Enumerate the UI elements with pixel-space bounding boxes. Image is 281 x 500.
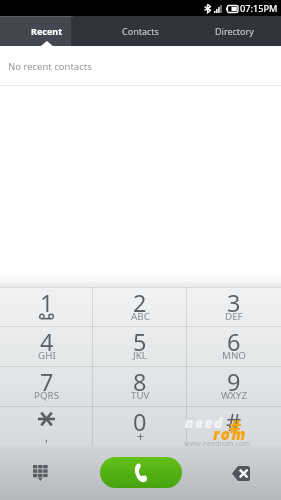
staticText: 1	[40, 287, 54, 319]
button[interactable]: ,	[0, 406, 93, 446]
button[interactable]: Contacts	[93, 16, 187, 46]
button[interactable]: 0	[93, 406, 187, 446]
staticText: 3	[227, 287, 241, 319]
button[interactable]: Recent	[0, 16, 93, 46]
button[interactable]: 5	[93, 326, 187, 366]
staticText: Directory	[215, 25, 254, 37]
staticText: WXYZ	[221, 389, 248, 402]
staticText: 5	[133, 326, 147, 358]
staticText: MNO	[222, 349, 246, 362]
staticText: JKL	[133, 349, 147, 362]
staticText: ABC	[131, 310, 150, 323]
staticText: TUV	[131, 389, 150, 402]
staticText: 0	[133, 406, 147, 438]
staticText: 8	[133, 366, 147, 398]
button[interactable]: 1	[0, 287, 93, 326]
button[interactable]: 7	[0, 366, 93, 406]
button[interactable]: 2	[93, 287, 187, 326]
button[interactable]: Directory	[187, 16, 281, 46]
staticText: ,	[45, 428, 49, 444]
staticText: DEF	[225, 310, 243, 323]
button[interactable]: #	[187, 406, 281, 446]
button[interactable]: Hide keypad	[24, 457, 56, 489]
staticText: 07:15PM	[240, 2, 278, 15]
staticText: 2	[133, 287, 147, 319]
staticText: +	[137, 428, 144, 444]
button[interactable]: 8	[93, 366, 187, 406]
button[interactable]: Call	[100, 457, 182, 488]
staticText: #	[226, 406, 242, 438]
button[interactable]: 6	[187, 326, 281, 366]
staticText: 9	[227, 366, 241, 398]
staticText: Recent	[31, 25, 63, 37]
staticText: #	[229, 414, 241, 439]
staticText: 7	[40, 366, 54, 398]
staticText: GHI	[38, 349, 56, 362]
button[interactable]: 9	[187, 366, 281, 406]
staticText: www.needrom.com	[184, 438, 250, 448]
staticText: No recent contacts	[8, 60, 92, 73]
staticText: need	[185, 413, 224, 432]
button[interactable]: 4	[0, 326, 93, 366]
staticText: Contacts	[122, 25, 159, 37]
button[interactable]: 3	[187, 287, 281, 326]
staticText: rom	[213, 424, 248, 444]
staticText: 6	[227, 326, 241, 358]
staticText: PQRS	[34, 389, 60, 402]
button[interactable]: Delete	[225, 457, 257, 489]
staticText: 4	[40, 326, 54, 358]
